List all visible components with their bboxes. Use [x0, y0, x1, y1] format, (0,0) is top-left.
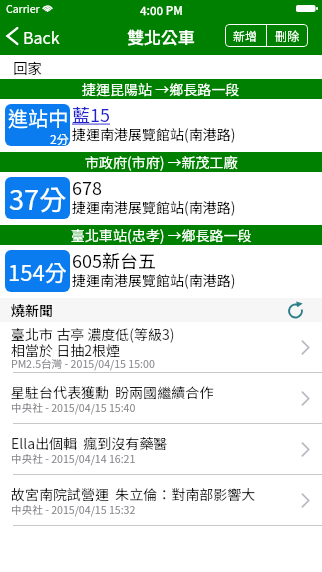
staticText: 臺北車站(忠孝) →鄉長路一段 [71, 225, 252, 245]
staticText: 藍15 [72, 101, 110, 127]
staticText: 中央社 - 2015/04/15 15:32 [11, 502, 136, 517]
staticText: 37分 [9, 179, 66, 218]
staticText: 4:00 PM [140, 2, 183, 19]
staticText: PM2.5台灣 - 2015/04/15 15:00 [11, 356, 155, 371]
button[interactable]: 星駐台代表獲勳 盼兩國繼續合作 [0, 373, 322, 424]
staticText: 相當於 日抽2根煙 [11, 340, 120, 360]
staticText: Ella出個輯 瘋到沒有藥醫 [11, 433, 168, 453]
staticText: 捷運南港展覽館站(南港路) [72, 124, 236, 144]
staticText: 捷運南港展覽館站(南港路) [72, 197, 236, 217]
button[interactable]: 154分 [0, 245, 322, 298]
button[interactable]: Back [0, 23, 68, 52]
staticText: 中央社 - 2015/04/15 15:40 [11, 400, 136, 415]
staticText: 154分 [8, 255, 67, 287]
button[interactable]: 刪除 [267, 24, 308, 47]
staticText: 進站中 [8, 104, 68, 132]
button[interactable]: 新增 [225, 24, 266, 47]
staticText: 678 [72, 174, 102, 200]
button[interactable]: 進站中 [0, 99, 322, 152]
staticText: 雙北公車 [127, 24, 195, 49]
staticText: 星駐台代表獲勳 盼兩國繼續合作 [11, 382, 214, 402]
button[interactable]: 回家 [0, 55, 322, 79]
staticText: 中央社 - 2015/04/14 16:21 [11, 451, 136, 466]
button[interactable]: 37分 [0, 172, 322, 225]
staticText: Back [23, 25, 60, 48]
button[interactable]: Refresh [286, 299, 308, 321]
staticText: 2分 [50, 130, 69, 146]
staticText: 回家 [13, 57, 42, 78]
staticText: 捷運南港展覽館站(南港路) [72, 270, 236, 290]
staticText: 605新台五 [72, 247, 156, 273]
staticText: 故宮南院試營運 朱立倫：對南部影響大 [11, 484, 256, 504]
staticText: 臺北市 古亭 濃度低(等級3) [11, 324, 175, 344]
staticText: 新增 [233, 27, 258, 44]
staticText: 刪除 [275, 27, 300, 44]
staticText: 燒新聞 [11, 300, 53, 320]
staticText: Carrier [6, 1, 40, 16]
staticText: 市政府(市府) →新茂工廠 [85, 152, 238, 172]
button[interactable]: Ella出個輯 瘋到沒有藥醫 [0, 424, 322, 475]
button[interactable]: 臺北市 古亭 濃度低(等級3) [0, 322, 322, 373]
staticText: 捷運昆陽站 →鄉長路一段 [82, 79, 240, 99]
button[interactable]: 故宮南院試營運 朱立倫：對南部影響大 [0, 475, 322, 526]
